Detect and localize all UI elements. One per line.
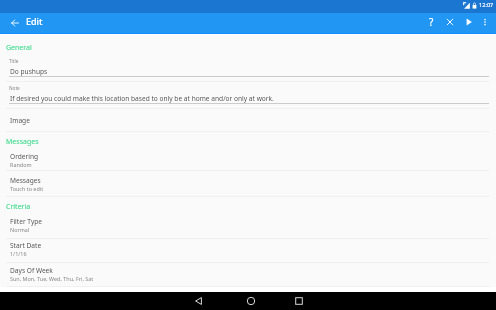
staticText: Normal <box>10 226 30 233</box>
button[interactable]: Close <box>441 13 458 30</box>
button[interactable]: Note <box>0 82 496 108</box>
staticText: Title <box>9 58 19 64</box>
staticText: If desired you could make this location … <box>10 94 274 103</box>
staticText: Do pushups <box>10 67 48 76</box>
button[interactable]: Filter Type <box>0 213 496 237</box>
button[interactable]: Start Date <box>0 238 496 262</box>
staticText: Image <box>10 116 30 125</box>
button[interactable]: Recents <box>283 292 315 310</box>
staticText: 12:07 <box>479 1 494 9</box>
staticText: 1/1/16 <box>10 250 27 257</box>
button[interactable]: Navigate up <box>6 14 23 31</box>
button[interactable]: Start <box>460 13 477 30</box>
button[interactable]: Image <box>0 109 496 131</box>
button[interactable]: Ordering <box>0 149 496 170</box>
staticText: Ordering <box>10 152 39 161</box>
staticText: Days Of Week <box>10 266 53 275</box>
staticText: Messages <box>6 137 39 147</box>
button[interactable]: Title <box>0 55 496 81</box>
button[interactable]: Back <box>183 292 215 310</box>
button[interactable]: More options <box>476 13 493 30</box>
button[interactable]: Help <box>423 13 440 30</box>
staticText: Random <box>10 161 32 168</box>
staticText: General <box>6 43 32 53</box>
staticText: Criteria <box>6 202 31 212</box>
staticText: Touch to edit <box>10 185 44 192</box>
button[interactable]: Home <box>235 292 267 310</box>
staticText: Sun, Mon, Tue, Wed, Thu, Fri, Sat <box>10 275 94 282</box>
staticText: ? <box>429 15 434 29</box>
button[interactable]: Messages <box>0 172 496 196</box>
staticText: Filter Type <box>10 217 43 226</box>
staticText: Start Date <box>10 241 42 250</box>
staticText: Messages <box>10 176 41 185</box>
staticText: Edit <box>26 15 43 27</box>
button[interactable]: Days Of Week <box>0 263 496 286</box>
staticText: Note <box>9 85 20 91</box>
